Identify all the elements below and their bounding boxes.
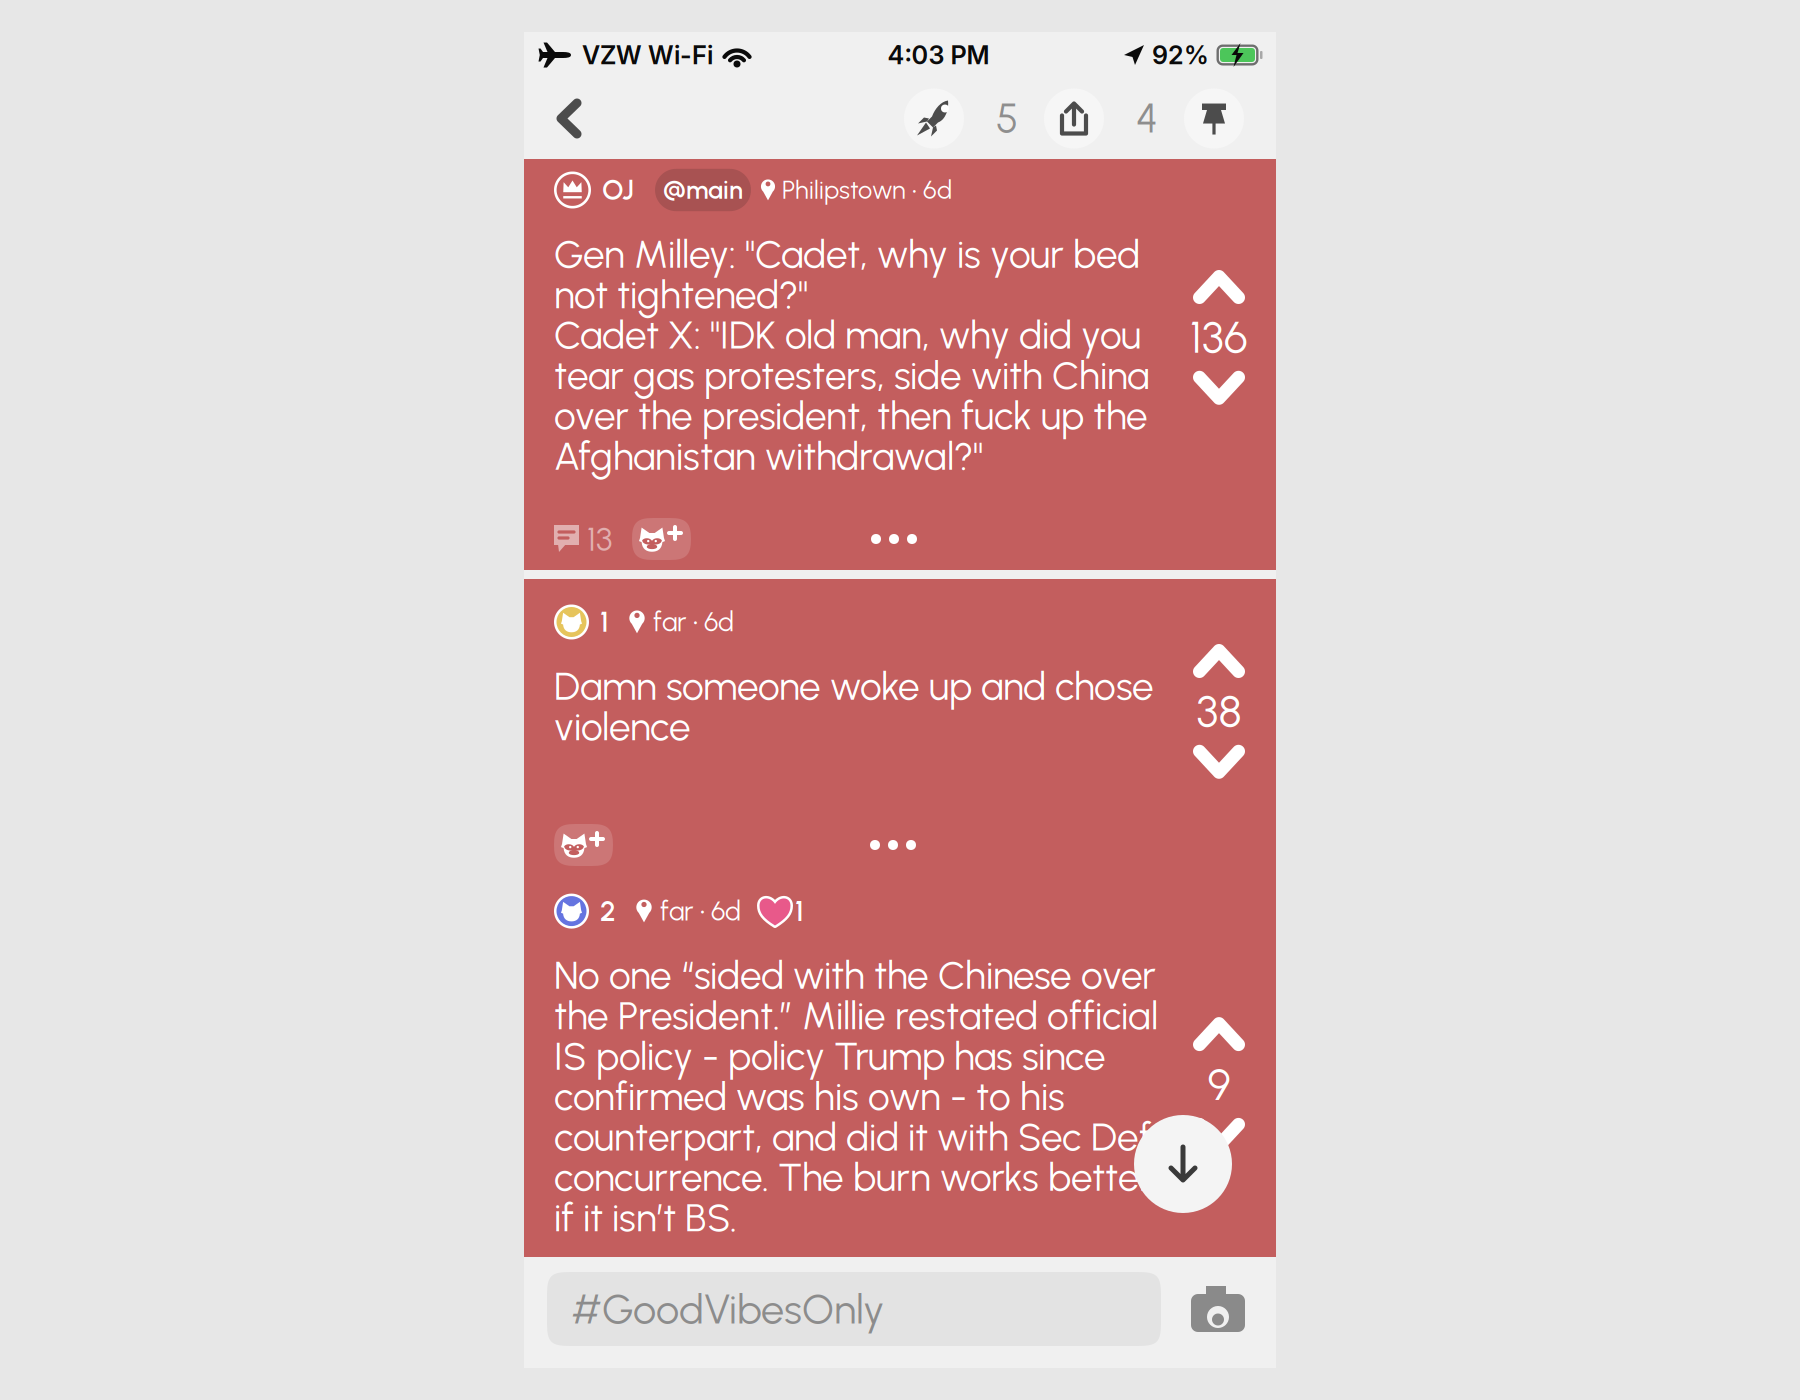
staticText: #GoodVibesOnly [571, 1284, 884, 1334]
button[interactable]: Back [538, 78, 600, 158]
button[interactable]: Downvote [1173, 1111, 1265, 1159]
staticText: OJ [602, 173, 634, 207]
button[interactable]: Upvote [1173, 637, 1265, 685]
staticText: No one “sided with the Chinese over the … [554, 952, 1158, 1241]
button[interactable]: Upvote [1173, 263, 1265, 311]
button[interactable]: Add reaction [554, 824, 613, 866]
button[interactable]: Camera [1191, 1286, 1245, 1332]
staticText: far • 6d [660, 895, 741, 927]
button[interactable]: More options [852, 824, 934, 866]
staticText: Gen Milley: "Cadet, why is your bed not … [554, 231, 1149, 479]
staticText: 4 [1136, 94, 1158, 142]
button[interactable]: 13 comments [554, 511, 612, 567]
staticText: 136 [1190, 311, 1248, 364]
staticText: Philipstown • 6d [782, 175, 952, 205]
staticText: 38 [1196, 685, 1241, 738]
staticText: 5 [996, 94, 1018, 142]
button[interactable]: Add reaction [632, 518, 691, 560]
button[interactable]: Share [1044, 88, 1104, 148]
button[interactable]: More options [853, 518, 935, 560]
button[interactable]: Upvote [1173, 1010, 1265, 1058]
staticText: @main [663, 175, 743, 205]
staticText: 1 [795, 894, 804, 928]
staticText: 4:03 PM [887, 40, 989, 70]
button[interactable]: Downvote [1173, 364, 1265, 412]
staticText: VZW Wi-Fi [582, 40, 713, 70]
button[interactable]: #GoodVibesOnly [547, 1272, 1161, 1346]
staticText: 13 [587, 519, 612, 559]
staticText: 1 [600, 605, 609, 639]
button[interactable]: Downvote [1173, 738, 1265, 786]
button[interactable]: Pin [1184, 88, 1244, 148]
staticText: far • 6d [653, 606, 734, 638]
staticText: 9 [1207, 1058, 1230, 1111]
staticText: 2 [600, 894, 616, 928]
staticText: Damn someone woke up and chose violence [554, 663, 1154, 750]
staticText: 92% [1152, 40, 1209, 70]
button[interactable]: Boost [904, 88, 964, 148]
